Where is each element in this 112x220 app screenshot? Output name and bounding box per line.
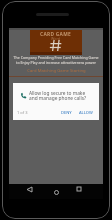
button[interactable]: Recents [74, 184, 84, 194]
staticText: The Company Providing Free Card Matching… [13, 55, 99, 60]
staticText: ALLOW [79, 110, 93, 115]
staticText: to Enjoy Play and increase attractivenes… [16, 60, 96, 65]
button[interactable]: Home [51, 187, 61, 197]
staticText: Allow log secure to make and manage phon… [29, 90, 87, 101]
staticText: CARD GAME [40, 31, 72, 38]
staticText: Word [51, 36, 61, 41]
button[interactable]: ALLOW [77, 108, 95, 117]
staticText: DENY [61, 110, 72, 115]
staticText: 1 of 3 [17, 110, 28, 115]
button[interactable]: Back [24, 184, 34, 194]
button[interactable]: DENY [59, 108, 74, 117]
button[interactable]: Card Matching Game Starting [27, 68, 86, 74]
